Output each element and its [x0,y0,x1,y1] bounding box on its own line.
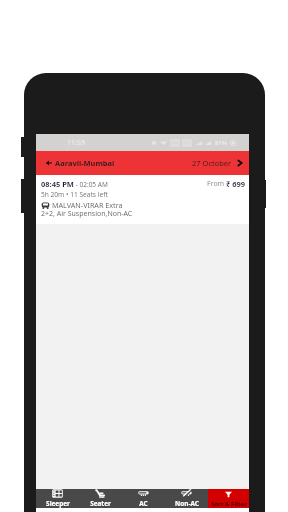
staticText: Non-AC [175,499,199,508]
staticText: Aaravli-Mumbai [55,158,115,168]
staticText: 5h 20m • 11 Seats left [41,190,108,199]
staticText: Sort & Filter [211,500,247,508]
button[interactable]: AC [122,489,165,508]
button[interactable]: Sleeper [36,489,79,508]
button[interactable]: Back [43,157,55,169]
staticText: 11:59 [67,138,85,148]
button[interactable]: 08:45 PM [36,175,249,224]
button[interactable]: Seater [79,489,122,508]
staticText: Sleeper [46,499,70,508]
staticText: Seater [90,499,111,508]
staticText: 08:45 PM [41,179,74,189]
button[interactable]: Non-AC [165,489,208,508]
button[interactable]: Sort & Filter [208,489,249,508]
staticText: ₹ 699 [226,179,246,189]
button[interactable]: 27 October [192,158,243,168]
staticText: - 02:05 AM [74,180,108,189]
staticText: AC [139,499,148,508]
staticText: From [207,179,226,189]
staticText: 2+2, Air Suspension,Non-AC [41,209,133,218]
staticText: 81% [215,139,228,147]
staticText: 27 October [192,158,232,168]
staticText: MALVAN-VIRAR Extra [52,200,123,209]
